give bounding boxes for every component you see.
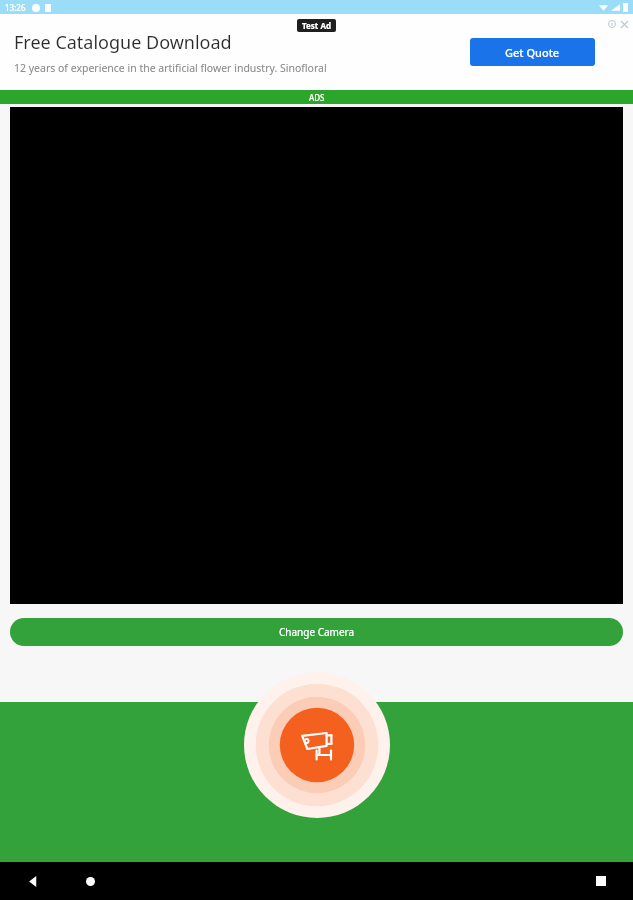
button[interactable]: Ad info (607, 19, 617, 29)
staticText: 12 years of experience in the artificial… (14, 61, 327, 75)
staticText: ADS (309, 92, 325, 103)
staticText: Get Quote (505, 45, 560, 60)
staticText: Change Camera (279, 625, 355, 639)
button[interactable]: Back (22, 870, 44, 892)
button[interactable]: Capture camera (244, 672, 390, 818)
button[interactable]: Change Camera (10, 618, 623, 646)
staticText: Test Ad (302, 20, 331, 31)
button[interactable]: Home (79, 870, 101, 892)
button[interactable]: Close ad (619, 19, 629, 29)
button[interactable]: Get Quote (470, 38, 595, 66)
staticText: Free Catalogue Download (14, 30, 232, 55)
button[interactable]: Recent apps (590, 870, 612, 892)
staticText: 13:26 (5, 2, 26, 13)
